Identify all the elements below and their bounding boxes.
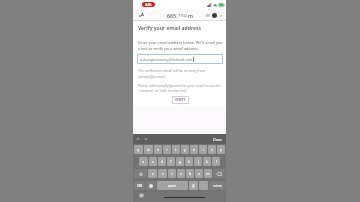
button[interactable]: c bbox=[168, 169, 176, 178]
staticText: The verification email will be arriving … bbox=[138, 68, 224, 79]
staticText: Verify your email address bbox=[138, 25, 201, 32]
staticText: space bbox=[168, 184, 177, 188]
staticText: b bbox=[189, 171, 192, 176]
staticText: Please add noreply@pcartel to your email… bbox=[138, 83, 224, 93]
button[interactable]: Previous field bbox=[136, 137, 140, 141]
staticText: f bbox=[170, 159, 172, 164]
button[interactable]: Tabs bbox=[219, 14, 223, 18]
button[interactable]: Shift bbox=[134, 169, 147, 178]
button[interactable]: Backspace bbox=[213, 169, 225, 178]
button[interactable]: w bbox=[144, 145, 153, 154]
button[interactable]: Dictation bbox=[139, 193, 144, 198]
staticText: k bbox=[206, 159, 208, 164]
staticText: d bbox=[161, 159, 164, 164]
button[interactable]: y bbox=[181, 145, 189, 154]
staticText: ushuagbeotaniey@hotmail.com bbox=[140, 57, 193, 62]
button[interactable]: v bbox=[177, 169, 185, 178]
staticText: o bbox=[211, 147, 214, 152]
button[interactable]: space bbox=[157, 181, 188, 190]
button[interactable]: u bbox=[190, 145, 198, 154]
button[interactable]: i bbox=[199, 145, 207, 154]
button[interactable]: l bbox=[212, 157, 220, 166]
button[interactable]: Done bbox=[213, 137, 223, 142]
button[interactable]: r bbox=[163, 145, 171, 154]
button[interactable]: Emoji bbox=[146, 181, 156, 190]
staticText: r bbox=[166, 147, 168, 152]
button[interactable]: p bbox=[217, 145, 225, 154]
staticText: t bbox=[175, 147, 177, 152]
staticText: y bbox=[184, 147, 186, 152]
staticText: 7702 bbox=[178, 13, 188, 18]
button[interactable]: a bbox=[139, 157, 148, 166]
button[interactable]: b bbox=[186, 169, 194, 178]
staticText: return bbox=[213, 184, 222, 188]
button[interactable]: d bbox=[158, 157, 166, 166]
staticText: c bbox=[171, 171, 173, 176]
staticText: A bbox=[141, 12, 144, 18]
staticText: s bbox=[152, 159, 154, 164]
button[interactable]: k bbox=[203, 157, 211, 166]
staticText: 4:36 bbox=[145, 3, 152, 7]
button[interactable]: x bbox=[158, 169, 167, 178]
staticText: q bbox=[137, 147, 140, 152]
staticText: g bbox=[179, 159, 182, 164]
staticText: VERIFY bbox=[175, 98, 186, 102]
button[interactable]: @ bbox=[189, 181, 198, 190]
button[interactable]: f bbox=[167, 157, 175, 166]
staticText: e bbox=[157, 147, 160, 152]
staticText: u bbox=[193, 147, 196, 152]
button[interactable]: o bbox=[208, 145, 216, 154]
staticText: @ bbox=[192, 184, 195, 188]
staticText: v bbox=[180, 171, 182, 176]
button[interactable]: VERIFY bbox=[172, 96, 189, 104]
button[interactable]: ushuagbeotaniey@hotmail.com bbox=[137, 54, 223, 64]
button[interactable]: Numbers bbox=[134, 181, 145, 190]
button[interactable]: s bbox=[149, 157, 157, 166]
button[interactable]: q bbox=[134, 145, 143, 154]
staticText: . bbox=[203, 184, 204, 188]
staticText: j bbox=[198, 159, 199, 164]
staticText: l bbox=[216, 159, 217, 164]
button[interactable]: Next field bbox=[144, 137, 148, 141]
staticText: m bbox=[206, 171, 210, 176]
staticText: Enter your email address below. We'll em… bbox=[138, 40, 226, 51]
button[interactable]: Page settings bbox=[138, 12, 144, 18]
staticText: EN bbox=[206, 14, 210, 18]
staticText: x bbox=[162, 171, 164, 176]
staticText: Done bbox=[213, 137, 223, 142]
button[interactable]: m bbox=[204, 169, 212, 178]
staticText: h bbox=[188, 159, 191, 164]
button[interactable]: h bbox=[185, 157, 193, 166]
button[interactable]: z bbox=[148, 169, 157, 178]
staticText: a bbox=[139, 14, 141, 18]
staticText: z bbox=[152, 171, 154, 176]
staticText: 665. bbox=[167, 12, 178, 19]
button[interactable]: t bbox=[172, 145, 180, 154]
staticText: w bbox=[147, 147, 150, 152]
staticText: n bbox=[198, 171, 201, 176]
button[interactable]: Return bbox=[209, 181, 225, 190]
button[interactable]: e bbox=[154, 145, 162, 154]
staticText: a bbox=[142, 159, 145, 164]
button[interactable]: . bbox=[199, 181, 208, 190]
staticText: m bbox=[188, 12, 193, 19]
staticText: i bbox=[203, 147, 204, 152]
button[interactable]: j bbox=[194, 157, 202, 166]
button[interactable]: n bbox=[195, 169, 203, 178]
staticText: p bbox=[220, 147, 223, 152]
staticText: 123 bbox=[137, 184, 143, 188]
button[interactable]: Reload bbox=[212, 13, 217, 18]
button[interactable]: g bbox=[176, 157, 184, 166]
